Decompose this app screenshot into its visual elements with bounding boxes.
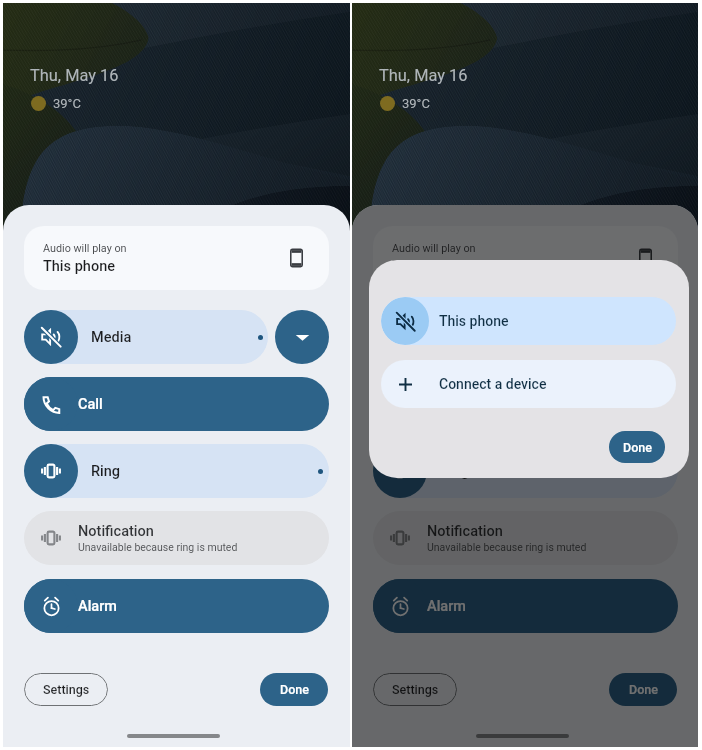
button[interactable]: Media [373, 310, 617, 364]
staticText: Media [440, 329, 481, 346]
button[interactable]: Ring [24, 444, 329, 498]
staticText: This phone [392, 258, 464, 275]
button[interactable]: Notification [24, 511, 329, 565]
staticText: Thu, May 16 [30, 66, 119, 85]
staticText: Audio will play on [392, 242, 476, 255]
staticText: Unavailable because ring is muted [427, 541, 587, 553]
button[interactable]: Audio will play on [373, 226, 678, 290]
staticText: Done [629, 682, 658, 697]
button[interactable]: Settings [373, 673, 457, 706]
staticText: Audio will play on [43, 242, 127, 255]
staticText: 39°C [402, 96, 430, 111]
staticText: Call [427, 396, 452, 413]
button[interactable]: Ring [373, 444, 427, 498]
staticText: Ring [91, 463, 121, 480]
button[interactable]: Expand volume output [624, 310, 678, 364]
staticText: Settings [43, 682, 90, 697]
button[interactable]: This phone [381, 297, 676, 345]
staticText: Notification [78, 523, 154, 540]
staticText: Call [78, 396, 103, 413]
button[interactable]: Alarm [24, 579, 329, 633]
staticText: Thu, May 16 [379, 66, 468, 85]
staticText: Connect a device [439, 376, 547, 392]
staticText: Media [91, 329, 132, 346]
staticText: Done [280, 682, 309, 697]
staticText: Notification [427, 523, 503, 540]
button[interactable]: Media [373, 310, 427, 364]
staticText: 39°C [53, 96, 81, 111]
button[interactable]: Alarm [373, 579, 678, 633]
button[interactable]: Media [24, 310, 78, 364]
button[interactable]: Call [24, 377, 78, 431]
button[interactable]: Ring [373, 444, 678, 498]
button[interactable]: Done [260, 673, 328, 706]
staticText: Alarm [78, 598, 117, 615]
button[interactable]: Alarm [373, 579, 427, 633]
button[interactable]: Notification [373, 511, 678, 565]
staticText: Done [623, 440, 652, 455]
button[interactable]: Call [373, 377, 678, 431]
staticText: Alarm [427, 598, 466, 615]
button[interactable]: Call [373, 377, 427, 431]
button[interactable]: Media [24, 310, 268, 364]
button[interactable]: Settings [24, 673, 108, 706]
button[interactable]: Ring [24, 444, 78, 498]
staticText: Ring [440, 463, 470, 480]
button[interactable]: Done [609, 673, 677, 706]
button[interactable]: Audio will play on [24, 226, 329, 290]
button[interactable]: Call [24, 377, 329, 431]
staticText: Settings [392, 682, 439, 697]
button[interactable]: Connect a device [381, 360, 676, 408]
button[interactable]: Expand volume output [275, 310, 329, 364]
staticText: This phone [439, 313, 509, 329]
button[interactable]: Alarm [24, 579, 78, 633]
staticText: Unavailable because ring is muted [78, 541, 238, 553]
button[interactable]: Done [609, 431, 665, 463]
staticText: This phone [43, 258, 115, 275]
